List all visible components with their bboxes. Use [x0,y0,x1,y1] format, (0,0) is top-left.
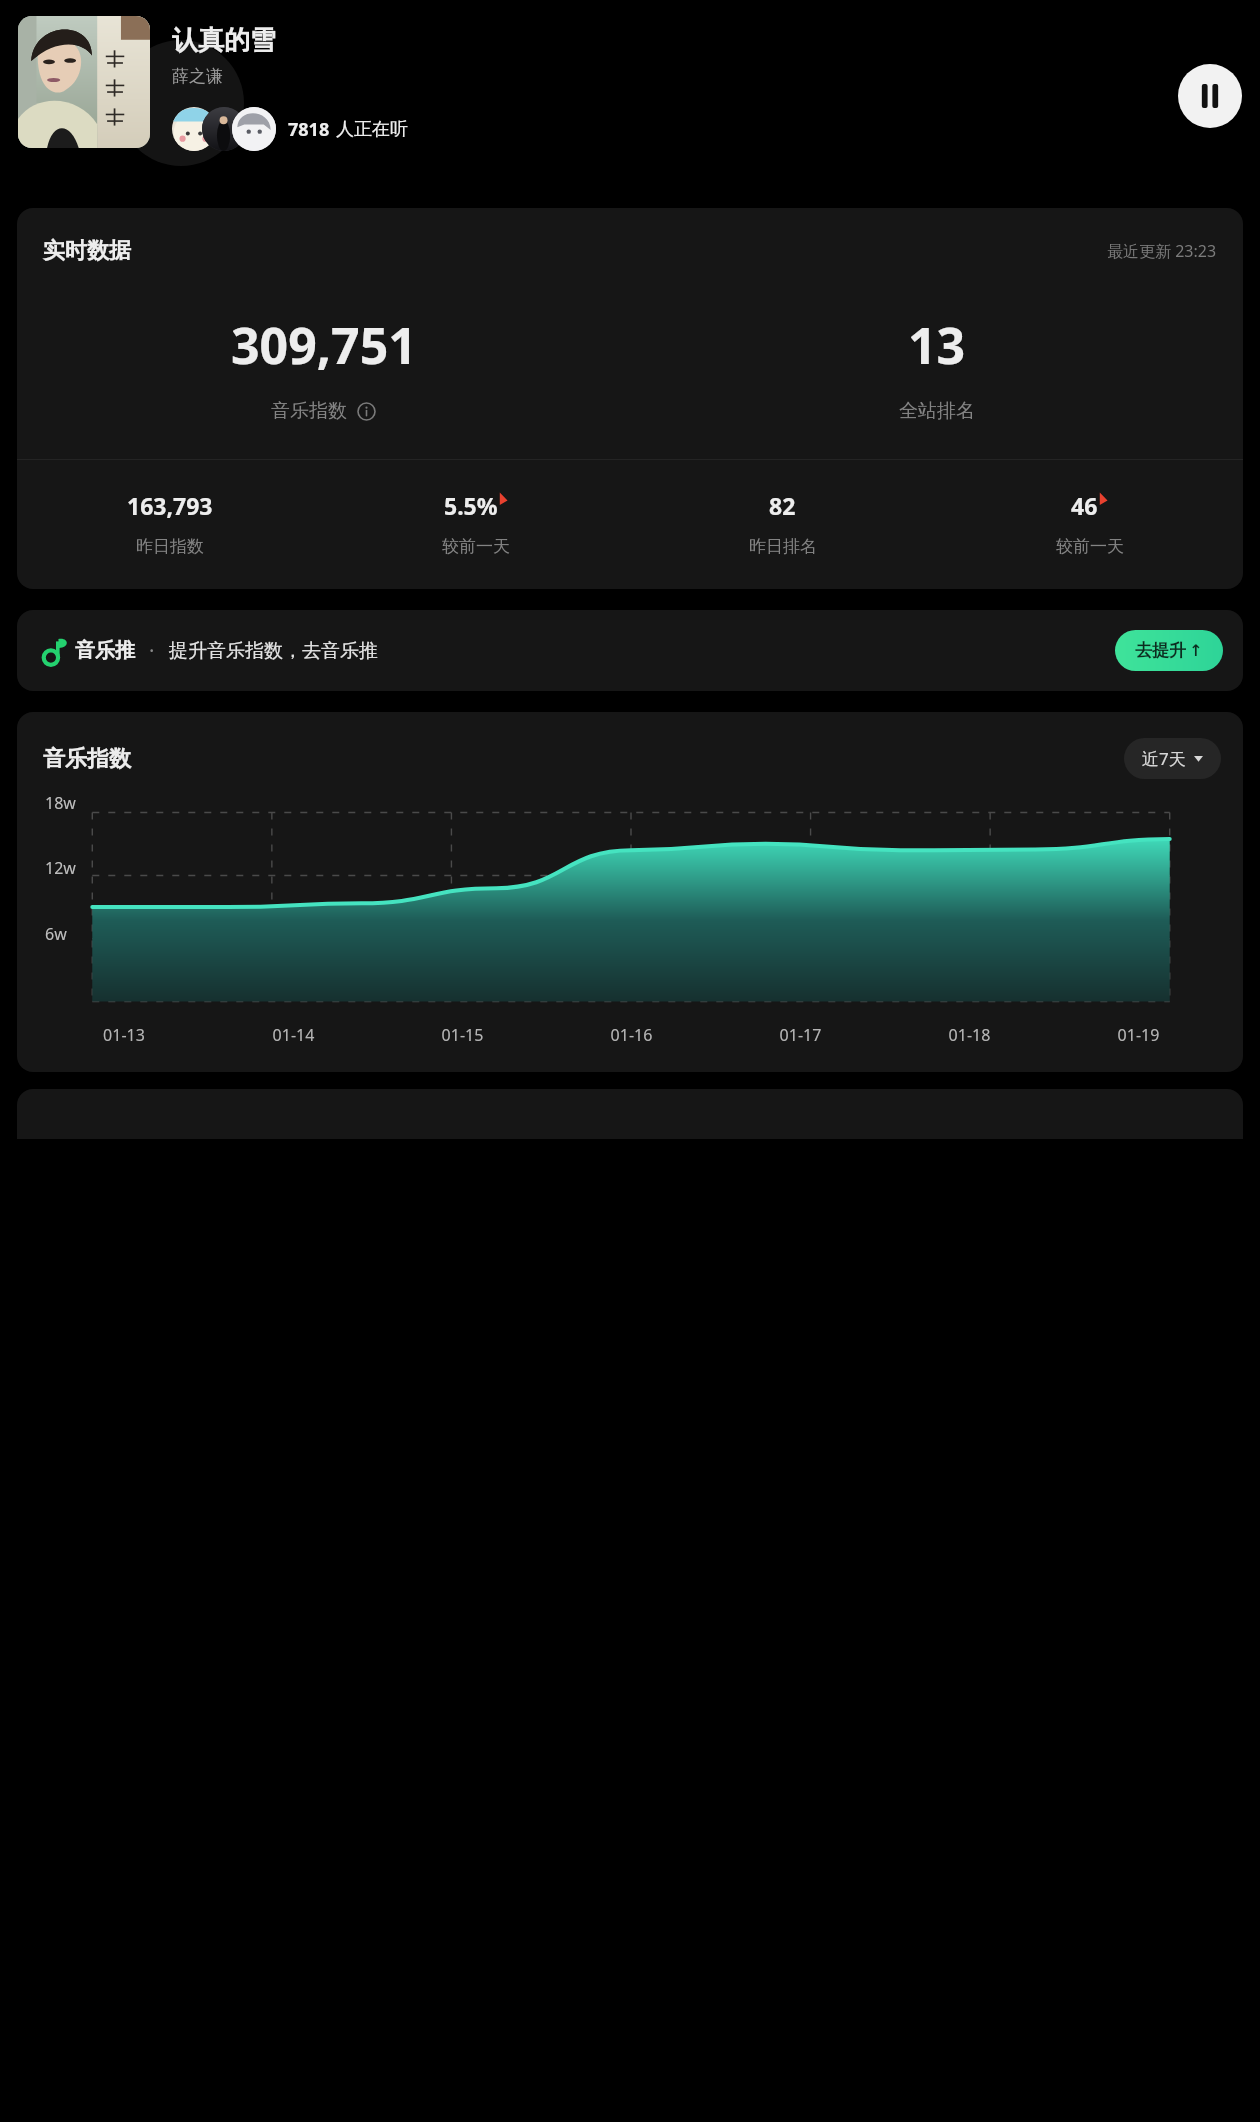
staticText: 人正在听 [336,118,408,141]
staticText: 309,751 [231,311,417,379]
staticText: 18w [45,792,76,814]
staticText: 音乐指数 [43,745,131,773]
staticText: 13 [908,311,966,379]
staticText: 实时数据 [43,237,131,265]
staticText: 认真的雪 [172,24,276,57]
staticText: 昨日排名 [749,536,817,557]
staticText: 音乐指数 [271,399,347,423]
staticText: 7818 [288,117,330,142]
button[interactable]: Pause [1178,64,1242,128]
staticText: 6w [45,923,67,945]
staticText: 01-15 [378,1024,547,1046]
staticText: 较前一天 [1056,536,1124,557]
staticText: 46 [1071,490,1098,521]
staticText: ↑ [1189,641,1203,660]
staticText: 较前一天 [442,536,510,557]
staticText: 163,793 [127,490,213,521]
button[interactable]: 音乐推 [17,610,1243,691]
button[interactable] [18,16,150,148]
staticText: 01-16 [547,1024,716,1046]
staticText: 01-13 [39,1024,209,1046]
staticText: 薛之谦 [172,66,223,87]
button[interactable]: 实时数据 [17,208,1243,589]
button[interactable]: 近7天 [1124,738,1221,779]
staticText: 01-17 [716,1024,885,1046]
staticText: 昨日指数 [136,536,204,557]
staticText: · [149,637,155,664]
staticText: 去提升 [1135,640,1186,661]
staticText: 最近更新 23:23 [1107,240,1217,262]
button[interactable]: 音乐指数 [17,712,1243,1072]
staticText: 01-19 [1054,1024,1223,1046]
staticText: 82 [769,490,796,521]
button[interactable]: 去提升 [1115,630,1223,671]
staticText: 5.5% [444,490,498,521]
staticText: 音乐推 [75,638,135,663]
staticText: 全站排名 [899,399,975,423]
staticText: 近7天 [1142,747,1186,770]
staticText: 01-14 [209,1024,378,1046]
staticText: 12w [45,857,76,879]
staticText: 01-18 [885,1024,1054,1046]
staticText: 提升音乐指数，去音乐推 [169,639,378,663]
